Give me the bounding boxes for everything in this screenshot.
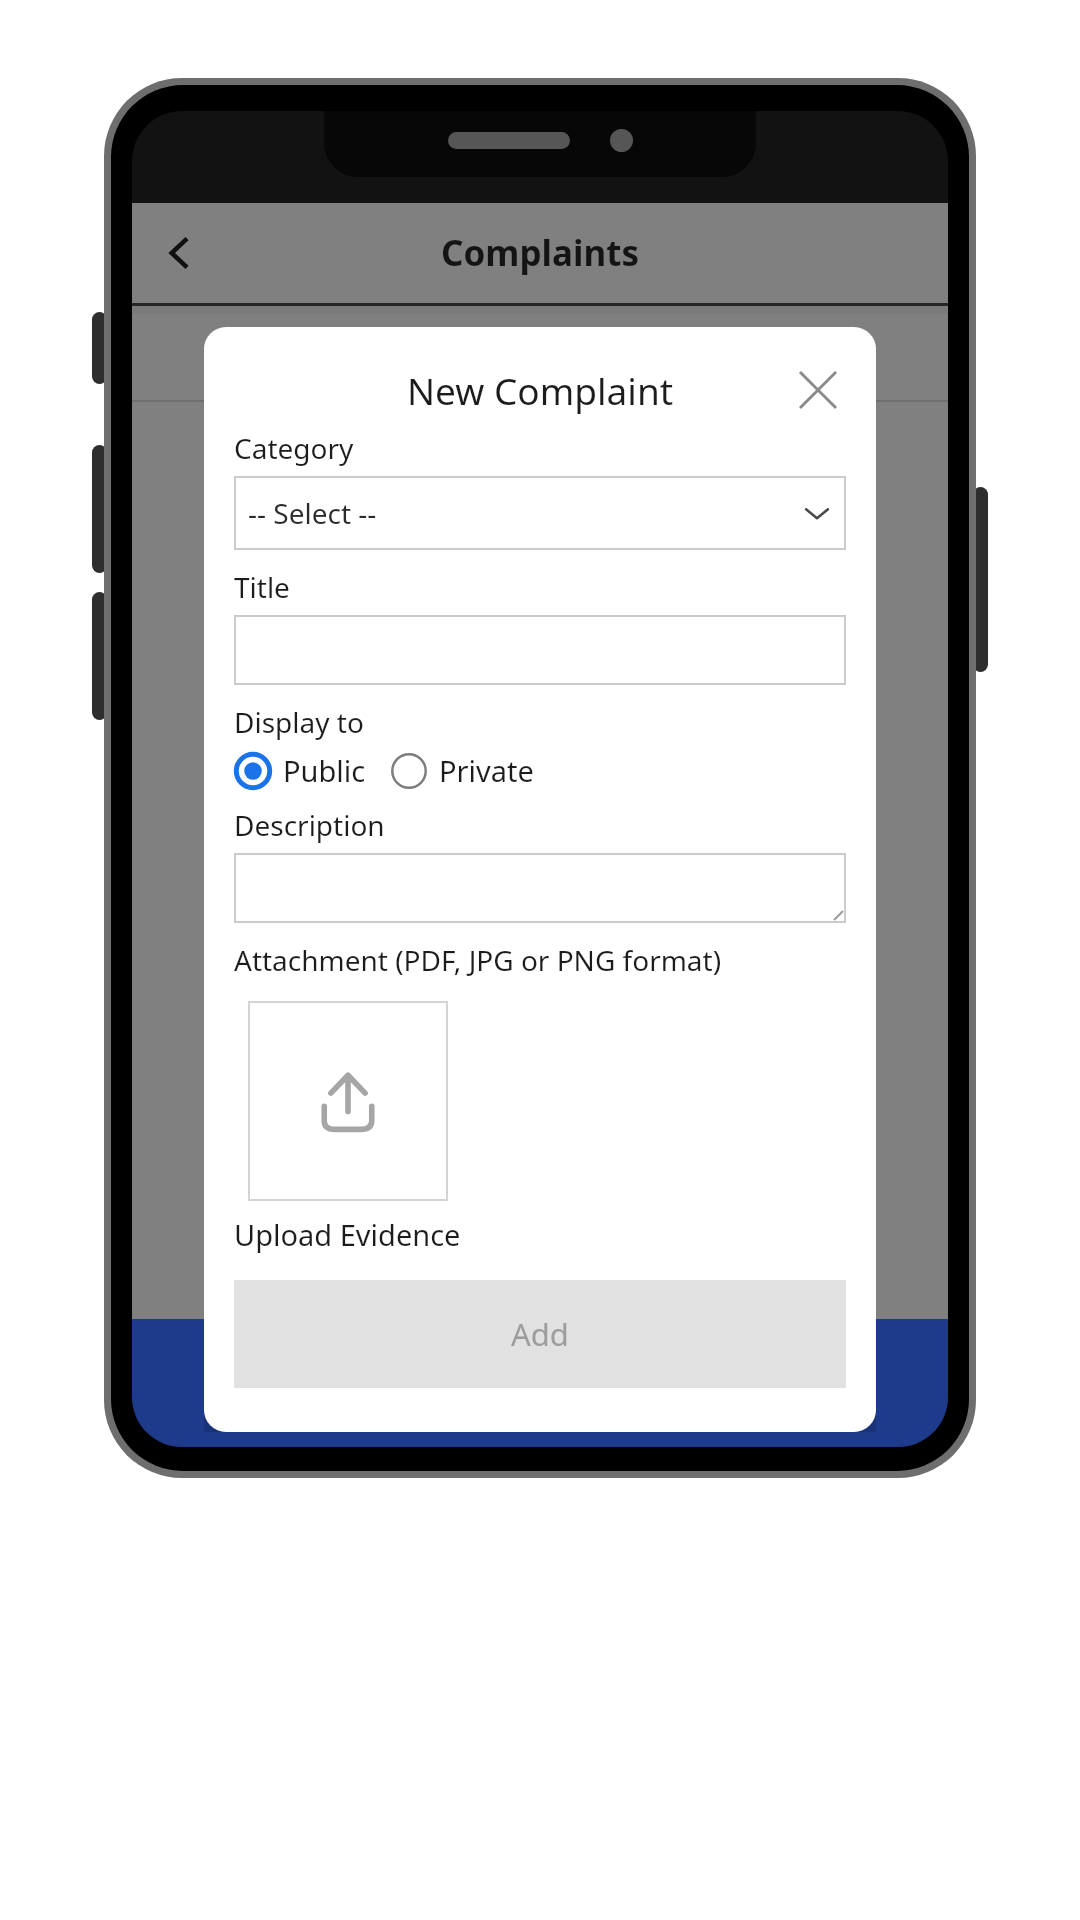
button[interactable]: New Complaint [132,1319,948,1447]
staticText: Title [234,568,290,606]
staticText: Display to [234,703,364,741]
button[interactable]: Public [234,751,366,790]
button[interactable]: -- Select -- [234,476,846,550]
staticText: Description [234,806,385,844]
button[interactable]: Close [790,362,846,418]
button[interactable]: Upload Evidence [248,1001,448,1201]
staticText: -- Select -- [248,494,377,532]
button[interactable]: Back [146,220,212,286]
staticText: Category [234,429,354,467]
staticText: Add [511,1313,569,1355]
button[interactable]: Add [234,1280,846,1388]
staticText: Attachment (PDF, JPG or PNG format) [234,941,722,979]
staticText: Public [283,751,366,790]
staticText: Upload Evidence [234,1215,461,1254]
staticText: New Complaint [429,1347,652,1389]
button[interactable]: Private [390,751,534,790]
staticText: Complaints [441,229,639,277]
button[interactable] [234,615,846,685]
staticText: New Complaint [407,365,674,415]
staticText: Private [439,751,534,790]
button[interactable] [234,853,846,923]
